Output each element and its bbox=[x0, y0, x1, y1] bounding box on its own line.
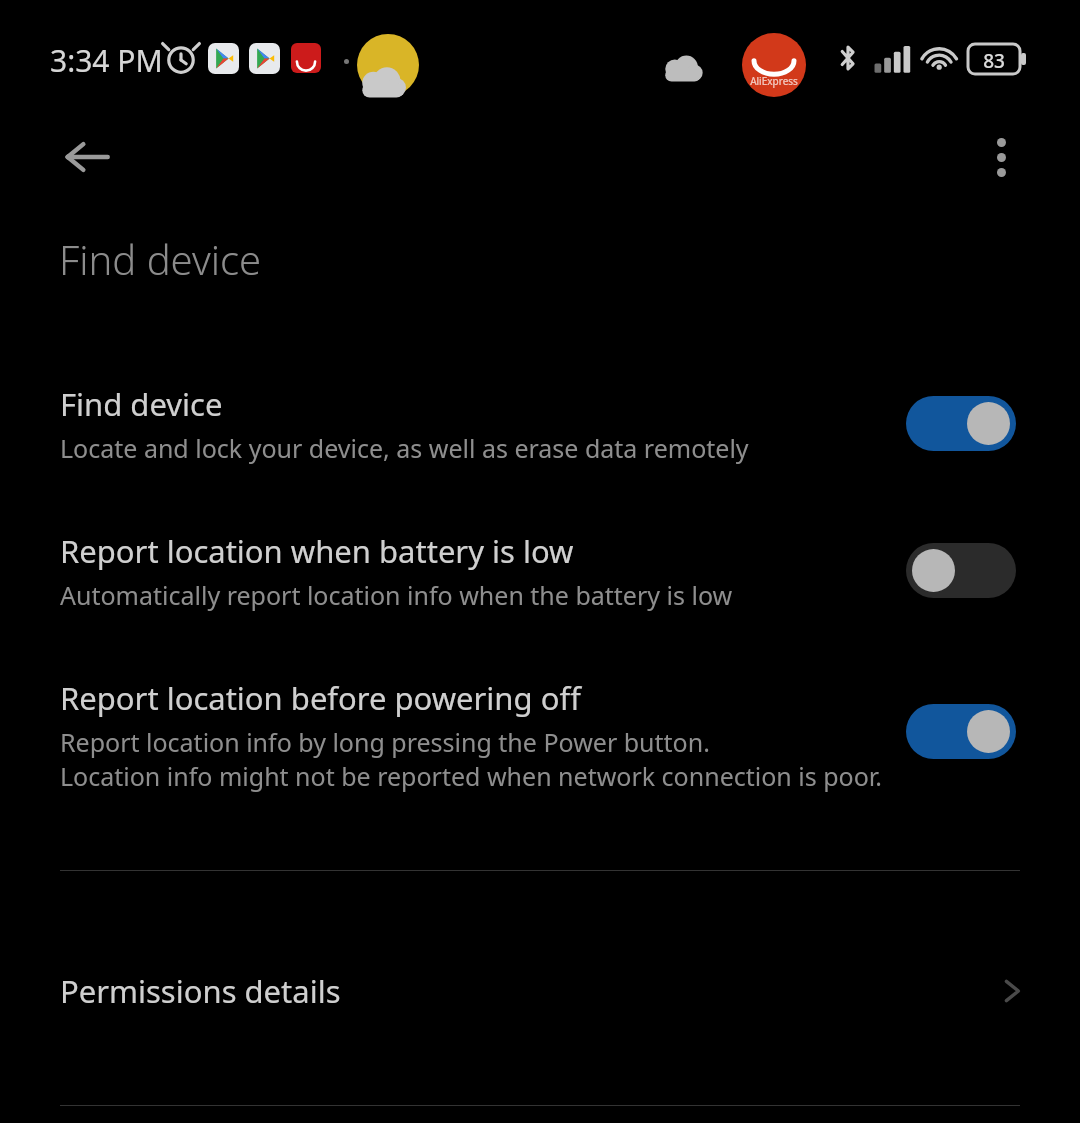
staticText: Find device bbox=[60, 383, 223, 425]
button[interactable]: Report location when battery is low, off bbox=[906, 543, 1016, 598]
staticText: Find device bbox=[59, 232, 262, 286]
staticText: Locate and lock your device, as well as … bbox=[60, 431, 749, 465]
staticText: Report location when battery is low bbox=[60, 530, 574, 572]
staticText: Report location before powering off bbox=[60, 677, 581, 719]
staticText: AliExpress bbox=[742, 74, 806, 88]
button[interactable]: Report location before powering off, on bbox=[906, 704, 1016, 759]
button[interactable]: Report location before powering off bbox=[0, 665, 1080, 800]
staticText: 3:34 PM bbox=[50, 40, 163, 81]
button[interactable]: Report location when battery is low bbox=[0, 518, 1080, 628]
button[interactable]: Permissions details bbox=[0, 905, 1080, 1077]
button[interactable]: Back bbox=[42, 112, 132, 202]
staticText: Report location info by long pressing th… bbox=[60, 725, 710, 759]
staticText: Automatically report location info when … bbox=[60, 578, 733, 612]
button[interactable]: More options bbox=[956, 112, 1046, 202]
button[interactable]: Find device, on bbox=[906, 396, 1016, 451]
staticText: Permissions details bbox=[60, 970, 341, 1012]
button[interactable]: Find device bbox=[0, 371, 1080, 481]
staticText: 83 bbox=[968, 48, 1020, 74]
staticText: Location info might not be reported when… bbox=[60, 759, 882, 793]
